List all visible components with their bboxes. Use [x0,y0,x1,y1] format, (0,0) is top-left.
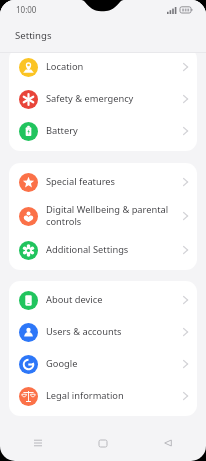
staticText: Digital Wellbeing & parental controls [46,203,179,228]
button[interactable]: Home [91,431,115,455]
staticText: 10:00 [16,4,37,15]
button[interactable]: Recent apps [26,431,50,455]
staticText: Battery [46,124,179,137]
staticText: Settings [15,29,52,42]
button[interactable]: Additional Settings [9,234,197,266]
button[interactable]: Location [9,53,197,83]
staticText: About device [46,293,179,306]
staticText: Additional Settings [46,243,179,256]
button[interactable]: Back [156,431,180,455]
button[interactable]: Digital Wellbeing & parental controls [9,198,197,234]
staticText: Location [46,60,179,73]
staticText: Safety & emergency [46,92,179,105]
button[interactable]: Google [9,348,197,380]
button[interactable]: Battery [9,115,197,147]
staticText: Google [46,357,179,370]
button[interactable]: Users & accounts [9,316,197,348]
button[interactable]: Safety & emergency [9,83,197,115]
button[interactable]: Legal information [9,380,197,412]
button[interactable]: Special features [9,166,197,198]
staticText: Legal information [46,389,179,402]
staticText: Special features [46,175,179,188]
button[interactable]: About device [9,284,197,316]
staticText: Users & accounts [46,325,179,338]
